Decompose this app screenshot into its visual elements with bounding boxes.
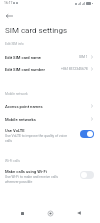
staticText: +8618512345678 xyxy=(61,67,88,71)
staticText: Mobile networks xyxy=(5,117,36,122)
staticText: Use VoLTE to improve the quality of voic… xyxy=(5,134,72,143)
staticText: Edit SIM card number xyxy=(5,67,45,72)
button[interactable]: Switch off xyxy=(80,171,94,179)
button[interactable]: Access point names xyxy=(0,100,100,112)
staticText: Edit SIM info xyxy=(5,42,24,46)
button[interactable]: Recent apps xyxy=(15,206,29,220)
staticText: Make calls using Wi-Fi xyxy=(5,169,47,174)
button[interactable]: Use VoLTE xyxy=(0,125,100,145)
staticText: 16:17 xyxy=(4,1,13,5)
button[interactable]: Back xyxy=(72,206,86,220)
button[interactable]: Switch on xyxy=(80,130,94,138)
button[interactable]: Home xyxy=(43,206,57,220)
staticText: Use VoLTE xyxy=(5,128,25,133)
button[interactable]: Back xyxy=(4,11,14,21)
staticText: Use Wi-Fi to make and receive calls wher… xyxy=(5,175,72,184)
staticText: Wi-Fi calls xyxy=(5,159,20,163)
button[interactable]: Edit SIM card name xyxy=(0,51,100,63)
staticText: SIM card settings xyxy=(5,26,68,35)
staticText: Access point names xyxy=(5,104,43,109)
staticText: SIM 1 xyxy=(79,55,88,59)
staticText: Edit SIM card name xyxy=(5,55,42,60)
button[interactable]: Mobile networks xyxy=(0,113,100,125)
staticText: Mobile network xyxy=(5,92,28,96)
button[interactable]: Edit SIM card number xyxy=(0,63,100,75)
button[interactable]: Make calls using Wi-Fi xyxy=(0,166,100,186)
